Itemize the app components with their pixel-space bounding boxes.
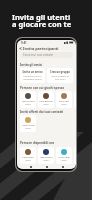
button[interactable]: Luca Bianchi xyxy=(38,91,54,108)
staticText: Invita xyxy=(25,103,31,106)
staticText: Invita un amico xyxy=(22,70,43,74)
staticText: Cerca tra i tuoi contatti xyxy=(23,53,53,57)
staticText: Giulia Conti xyxy=(22,124,35,127)
button[interactable]: Indietro xyxy=(18,46,23,51)
staticText: 9:41 xyxy=(21,41,27,45)
staticText: Invita partecipanti xyxy=(23,46,59,51)
staticText: Gioca insieme ai tuoi amici xyxy=(51,75,69,81)
staticText: Luca Bianchi xyxy=(39,100,53,103)
staticText: Invita xyxy=(61,159,67,162)
staticText: Persone con cui giochi spesso xyxy=(20,86,65,90)
staticText: Anna Verdi xyxy=(58,156,70,159)
staticText: Condividi il link e guadagna bonus xyxy=(23,75,42,81)
button[interactable]: Cerca tra i tuoi contatti xyxy=(20,52,73,58)
staticText: Invita xyxy=(43,103,49,106)
button[interactable]: Tab xyxy=(44,164,49,169)
button[interactable]: Anna Verdi xyxy=(56,147,72,164)
button[interactable]: Giulia Conti xyxy=(20,115,36,132)
staticText: Paolo Ricci xyxy=(22,156,34,159)
button[interactable]: Marco Rossi xyxy=(20,91,36,108)
button[interactable]: Tab xyxy=(28,164,33,169)
button[interactable]: Tab xyxy=(60,164,65,169)
staticText: Invita xyxy=(61,103,67,106)
staticText: Crea un gruppo xyxy=(50,70,70,74)
button[interactable]: Elena Moro xyxy=(38,147,54,164)
button[interactable]: Invita un amico xyxy=(20,68,45,83)
staticText: Invita xyxy=(25,127,31,130)
staticText: Persone disponibili ora xyxy=(20,141,55,145)
staticText: Invita xyxy=(25,159,31,162)
staticText: Invita gli amici xyxy=(20,63,43,67)
staticText: Elena Moro xyxy=(40,156,53,159)
staticText: Sara Neri xyxy=(59,100,69,103)
staticText: Marco Rossi xyxy=(22,100,35,103)
staticText: Inviti offerti dai tuoi contatti xyxy=(20,110,64,114)
button[interactable]: Paolo Ricci xyxy=(20,147,36,164)
button[interactable]: Crea un gruppo xyxy=(47,68,73,83)
button[interactable]: Sara Neri xyxy=(56,91,72,108)
staticText: Invita gli utenti a giocare con te xyxy=(12,12,72,30)
staticText: Invita xyxy=(43,159,49,162)
